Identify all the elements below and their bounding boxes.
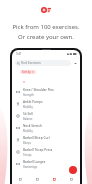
staticText: Barbell Tricep Press (23, 148, 53, 152)
button[interactable]: Knee / Shoulder Flex (12, 86, 80, 98)
staticText: Knee / Shoulder Flex (23, 88, 54, 92)
staticText: Sort by (22, 70, 31, 74)
staticText: Mobility (23, 129, 33, 133)
staticText: Strength (23, 93, 34, 97)
button[interactable]: Add exercise (69, 166, 77, 174)
button[interactable]: Sit Still (12, 110, 80, 122)
button[interactable]: Sort by (20, 70, 36, 74)
staticText: Barbell Bicep Curl (23, 136, 50, 140)
staticText: Sit Still (23, 112, 33, 116)
staticText: Barbell Lunges (23, 160, 46, 164)
staticText: Or create your own. (18, 33, 74, 41)
button[interactable]: Home (12, 175, 29, 184)
button[interactable]: Filter (73, 61, 77, 65)
button[interactable]: Ankle Pumps (12, 98, 80, 110)
button[interactable]: Find Exercises (15, 60, 71, 66)
button[interactable]: Barbell Bicep Curl (12, 134, 80, 146)
button[interactable]: Barbell Tricep Press (12, 146, 80, 158)
staticText: Balance (23, 117, 33, 121)
staticText: Find Exercises (21, 61, 41, 65)
staticText: Hamstrings (23, 165, 38, 169)
button[interactable]: Profile (63, 175, 80, 184)
staticText: Pick from 100 exercises. (12, 23, 80, 31)
button[interactable]: Create (46, 175, 63, 184)
staticText: Ankle Pumps (23, 100, 43, 104)
staticText: Mobility (23, 105, 33, 109)
staticText: 9:41 (16, 52, 22, 56)
staticText: Neck Stretch (23, 124, 42, 128)
staticText: Biceps (23, 141, 31, 145)
button[interactable]: Barbell Lunges (12, 158, 80, 170)
staticText: Triceps (23, 153, 32, 157)
button[interactable]: Neck Stretch (12, 122, 80, 134)
button[interactable]: Library (29, 175, 46, 184)
